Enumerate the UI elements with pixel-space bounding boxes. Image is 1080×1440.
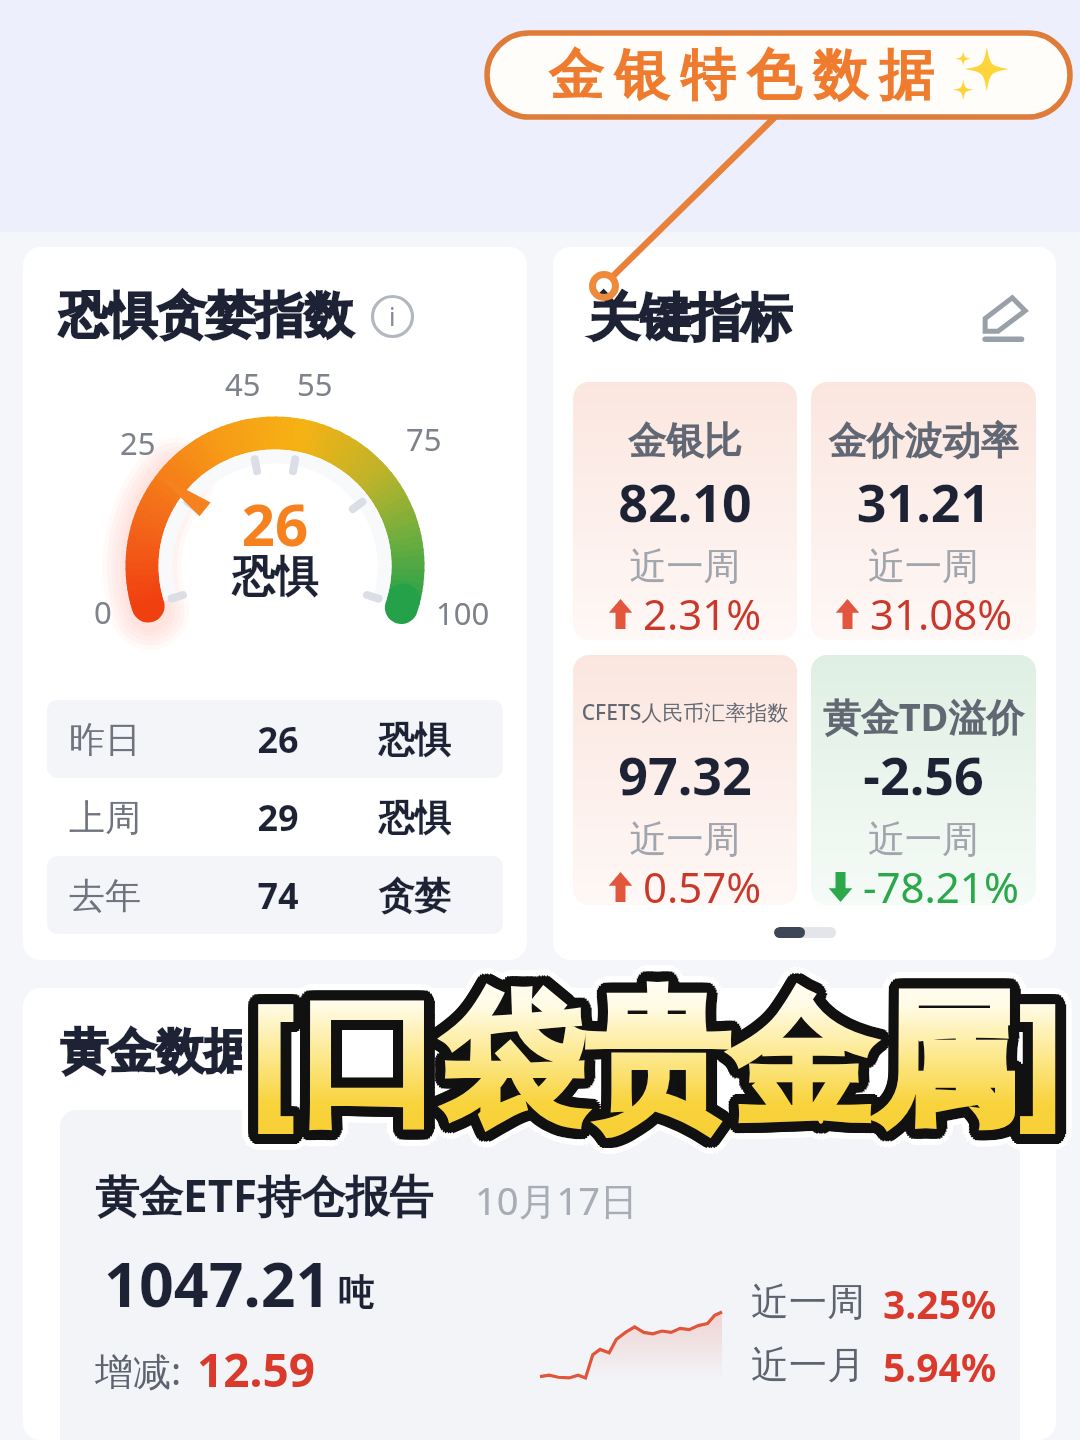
staticText: 0.57% xyxy=(643,858,762,905)
staticText: [口袋贵金属] xyxy=(256,941,1070,1138)
staticText: [口袋贵金属] xyxy=(252,972,1066,1169)
staticText: [口袋贵金属] xyxy=(240,956,1054,1153)
staticText: 吨 xyxy=(338,1270,374,1315)
button[interactable]: 关键指标 xyxy=(553,247,1056,960)
staticText: [口袋贵金属] xyxy=(241,951,1055,1148)
staticText: [口袋贵金属] xyxy=(256,971,1070,1168)
staticText: [口袋贵金属] xyxy=(241,969,1055,1166)
staticText: [口袋贵金属] xyxy=(266,956,1080,1153)
staticText: [口袋贵金属] xyxy=(262,967,1076,1164)
staticText: [口袋贵金属] xyxy=(251,946,1065,1143)
staticText: [口袋贵金属] xyxy=(236,949,1050,1146)
staticText: [口袋贵金属] xyxy=(259,969,1073,1166)
staticText: 昨日 xyxy=(69,717,230,762)
staticText: 恐惧贪婪指数 xyxy=(59,285,353,347)
button[interactable]: 上周 xyxy=(47,778,503,856)
staticText: 100 xyxy=(436,592,490,634)
staticText: 黄金数据 xyxy=(60,1022,252,1082)
staticText: [口袋贵金属] xyxy=(234,956,1048,1153)
staticText: [口袋贵金属] xyxy=(261,956,1075,1153)
staticText: 12.59 xyxy=(197,1338,316,1401)
staticText: [口袋贵金属] xyxy=(264,949,1078,1146)
staticText: 黄金TD溢价 xyxy=(811,690,1036,742)
staticText: CFETS人民币汇率指数 xyxy=(573,698,797,727)
staticText: 金银比 xyxy=(573,417,797,465)
staticText: 45 xyxy=(225,363,261,405)
button[interactable]: 编辑 xyxy=(981,295,1027,341)
staticText: [口袋贵金属] xyxy=(252,940,1066,1137)
staticText: 恐惧 xyxy=(205,550,345,604)
staticText: [口袋贵金属] xyxy=(258,949,1072,1146)
staticText: [口袋贵金属] xyxy=(266,952,1080,1149)
staticText: [口袋贵金属] xyxy=(246,946,1060,1143)
staticText: 近一周 xyxy=(811,816,1036,863)
staticText: -2.56 xyxy=(811,739,1036,810)
staticText: 上周 xyxy=(69,795,230,840)
staticText: [口袋贵金属] xyxy=(266,960,1080,1157)
staticText: 31.08% xyxy=(870,585,1013,640)
staticText: 去年 xyxy=(69,873,230,918)
staticText: [口袋贵金属] xyxy=(262,945,1076,1142)
button[interactable]: 黄金TD溢价 xyxy=(811,655,1036,905)
staticText: [口袋贵金属] xyxy=(259,961,1073,1158)
staticText: [口袋贵金属] xyxy=(256,965,1070,1162)
staticText: 25 xyxy=(120,422,156,464)
staticText: [口袋贵金属] xyxy=(259,943,1073,1140)
staticText: [口袋贵金属] xyxy=(246,966,1060,1163)
button[interactable]: 去年 xyxy=(47,856,503,934)
staticText: i xyxy=(389,299,396,333)
staticText: [口袋贵金属] xyxy=(244,941,1058,1138)
staticText: 31.21 xyxy=(811,466,1036,537)
staticText: [口袋贵金属] xyxy=(244,965,1058,1162)
staticText: 26 xyxy=(230,715,326,764)
staticText: [口袋贵金属] xyxy=(234,952,1048,1149)
staticText: [口袋贵金属] xyxy=(240,953,1054,1150)
button[interactable]: CFETS人民币汇率指数 xyxy=(573,655,797,905)
staticText: 75 xyxy=(406,418,442,460)
staticText: [口袋贵金属] xyxy=(249,946,1063,1143)
staticText: [口袋贵金属] xyxy=(251,966,1065,1163)
staticText: [口袋贵金属] xyxy=(244,947,1058,1144)
button[interactable]: 金银比 xyxy=(573,382,797,640)
staticText: [口袋贵金属] xyxy=(238,945,1052,1142)
staticText: [口袋贵金属] xyxy=(258,963,1072,1160)
staticText: [口袋贵金属] xyxy=(241,943,1055,1140)
staticText: 82.10 xyxy=(573,466,797,537)
button[interactable]: 金价波动率 xyxy=(811,382,1036,640)
staticText: [口袋贵金属] xyxy=(242,963,1056,1160)
staticText: 3.25% xyxy=(883,1277,997,1330)
button[interactable]: 黄金ETF持仓报告 xyxy=(60,1110,1020,1440)
staticText: [口袋贵金属] xyxy=(236,963,1050,1160)
staticText: [口袋贵金属] xyxy=(244,971,1058,1168)
staticText: 近一月 xyxy=(751,1341,865,1389)
staticText: 5.94% xyxy=(883,1340,997,1393)
staticText: [口袋贵金属] xyxy=(254,946,1068,1143)
staticText: [口袋贵金属] xyxy=(264,963,1078,1160)
staticText: [口袋贵金属] xyxy=(242,949,1056,1146)
staticText: 近一周 xyxy=(573,543,797,590)
staticText: 0 xyxy=(94,591,112,633)
staticText: [口袋贵金属] xyxy=(260,953,1074,1150)
staticText: 黄金ETF持仓报告 xyxy=(95,1165,434,1225)
staticText: 恐惧 xyxy=(326,795,503,840)
staticText: [口袋贵金属] xyxy=(234,960,1048,1157)
button[interactable]: 昨日 xyxy=(47,700,503,778)
staticText: 2.31% xyxy=(643,585,762,640)
button[interactable]: 恐惧贪婪指数 xyxy=(23,247,527,960)
staticText: 恐惧 xyxy=(326,717,503,762)
staticText: [口袋贵金属] xyxy=(241,961,1055,1158)
button[interactable]: 说明 xyxy=(371,295,414,338)
staticText: 26 xyxy=(205,484,345,563)
staticText: 74 xyxy=(230,871,326,920)
staticText: 近一周 xyxy=(573,816,797,863)
staticText: 金银特色数据 xyxy=(543,41,939,110)
staticText: 贪婪 xyxy=(326,873,503,918)
staticText: 97.32 xyxy=(573,739,797,810)
staticText: [口袋贵金属] xyxy=(256,947,1070,1144)
staticText: 金价波动率 xyxy=(811,417,1036,465)
staticText: [口袋贵金属] xyxy=(238,967,1052,1164)
staticText: [口袋贵金属] xyxy=(248,972,1062,1169)
staticText: 近一周 xyxy=(751,1278,865,1326)
staticText: [口袋贵金属] xyxy=(259,951,1073,1148)
staticText: 1047.21 xyxy=(104,1242,331,1325)
